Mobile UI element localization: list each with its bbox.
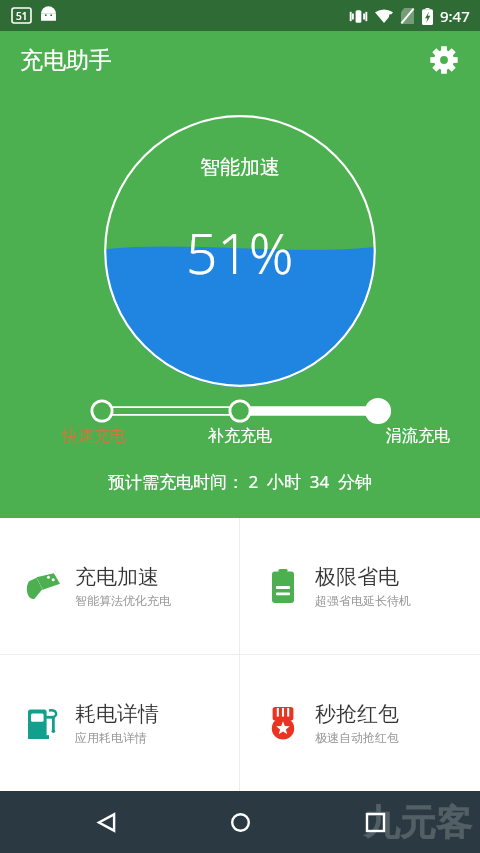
staticText: 预计需充电时间： 2 小时 34 分钟 [108,470,373,493]
staticText: 九元客 [364,800,472,845]
staticText: 智能算法优化充电 [75,593,171,608]
staticText: 智能加速 [200,155,280,180]
button[interactable]: 涓流充电 [320,398,480,424]
staticText: 补充充电 [208,426,272,446]
staticText: 51 [16,9,28,23]
staticText: 充电助手 [20,46,112,75]
staticText: 秒抢红包 [315,701,399,727]
button[interactable]: 补充充电 [160,398,320,424]
staticText: 极限省电 [315,564,399,590]
staticText: 51% [186,215,294,290]
button[interactable]: 充电加速 [0,518,239,654]
staticText: 9:47 [440,6,470,26]
staticText: 充电加速 [75,564,159,590]
button[interactable]: Settings [420,36,468,84]
button[interactable]: Back [77,793,135,851]
staticText: 应用耗电详情 [75,730,147,745]
staticText: 涓流充电 [386,426,450,446]
button[interactable]: Home [211,793,269,851]
staticText: 耗电详情 [75,701,159,727]
button[interactable]: 极限省电 [240,518,480,654]
staticText: 极速自动抢红包 [315,730,399,745]
button[interactable]: Recents [346,793,404,851]
staticText: 快速充电 [62,426,126,446]
staticText: 超强省电延长待机 [315,593,411,608]
button[interactable]: 秒抢红包 [240,655,480,791]
button[interactable]: 快速充电 [0,398,160,424]
button[interactable]: 耗电详情 [0,655,239,791]
